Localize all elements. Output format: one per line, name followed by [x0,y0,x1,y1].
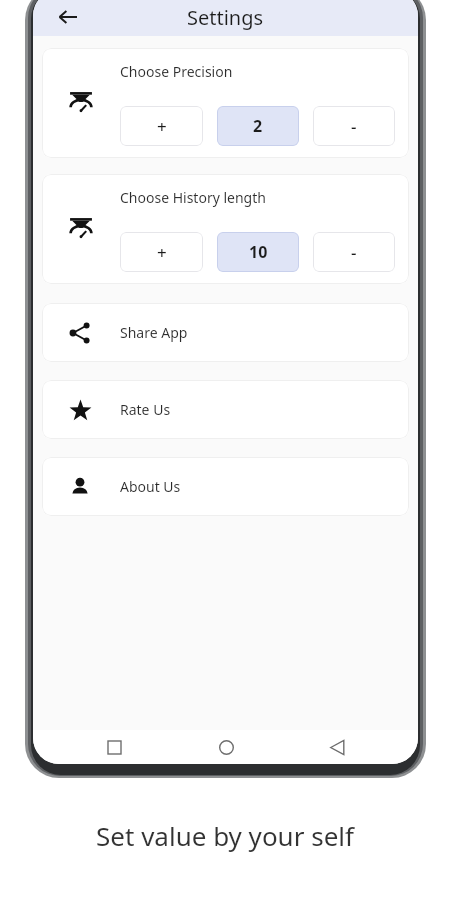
staticText: - [351,241,357,264]
staticText: About Us [120,477,181,496]
button[interactable]: Back [51,0,85,34]
button[interactable]: 2 [217,106,299,146]
staticText: Share App [120,323,188,342]
button[interactable]: Home [215,736,237,758]
button[interactable]: Choose Precision [42,48,409,158]
button[interactable]: - [313,232,395,272]
staticText: + [157,115,167,138]
staticText: Rate Us [120,400,171,419]
staticText: + [157,241,167,264]
button[interactable]: Share App [42,303,409,362]
button[interactable]: - [313,106,395,146]
staticText: Choose History length [120,188,266,207]
staticText: Set value by your self [0,818,450,853]
button[interactable]: Rate Us [42,380,409,439]
staticText: - [351,115,357,138]
button[interactable]: + [120,232,203,272]
button[interactable]: Choose History length [42,174,409,284]
staticText: Settings [187,4,264,31]
button[interactable]: Recents [103,736,125,758]
staticText: Choose Precision [120,62,233,81]
button[interactable]: + [120,106,203,146]
button[interactable]: 10 [217,232,299,272]
button[interactable]: Back [326,736,348,758]
staticText: 10 [249,241,268,263]
staticText: 2 [253,115,263,137]
button[interactable]: About Us [42,457,409,516]
